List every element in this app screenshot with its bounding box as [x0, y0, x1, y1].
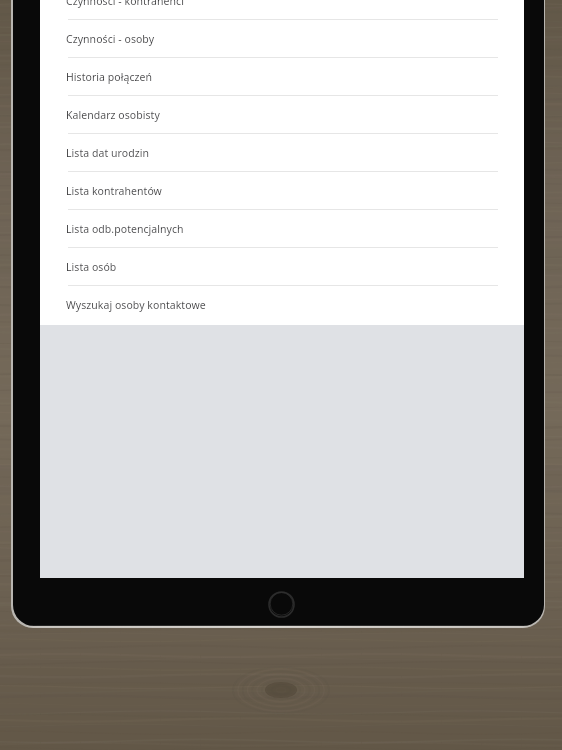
staticText: Lista dat urodzin — [66, 146, 149, 160]
button[interactable]: Lista dat urodzin — [40, 134, 524, 171]
button[interactable]: Kalendarz osobisty — [40, 96, 524, 133]
staticText: Historia połączeń — [66, 70, 152, 84]
button[interactable]: Lista kontrahentów — [40, 172, 524, 209]
staticText: Lista kontrahentów — [66, 184, 162, 198]
button[interactable]: Home — [268, 591, 295, 618]
button[interactable]: Lista osób — [40, 248, 524, 285]
staticText: Lista osób — [66, 260, 117, 274]
staticText: Wyszukaj osoby kontaktowe — [66, 298, 206, 312]
button[interactable]: Historia połączeń — [40, 58, 524, 95]
staticText: Czynności - osoby — [66, 32, 155, 46]
button[interactable]: Lista odb.potencjalnych — [40, 210, 524, 247]
staticText: Lista odb.potencjalnych — [66, 222, 184, 236]
staticText: Czynności - kontrahenci — [66, 0, 184, 8]
staticText: Kalendarz osobisty — [66, 108, 160, 122]
button[interactable]: Czynności - osoby — [40, 20, 524, 57]
button[interactable]: Czynności - kontrahenci — [40, 0, 524, 19]
button[interactable]: Wyszukaj osoby kontaktowe — [40, 286, 524, 323]
